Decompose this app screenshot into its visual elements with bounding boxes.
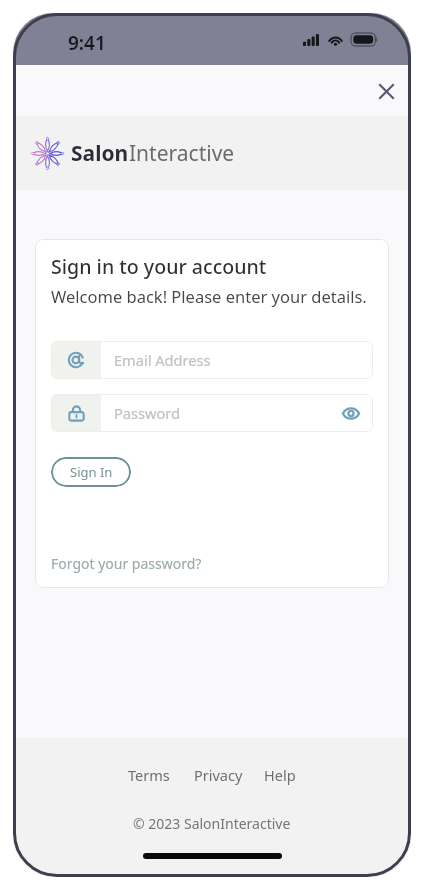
staticText: Email Address — [114, 350, 211, 370]
staticText: © 2023 SalonInteractive — [133, 814, 291, 833]
button[interactable]: Help — [264, 765, 296, 785]
staticText: Terms — [128, 765, 170, 785]
button[interactable]: Email Address — [51, 341, 373, 379]
staticText: Salon — [71, 139, 129, 168]
staticText: Password — [114, 403, 181, 423]
staticText: Welcome back! Please enter your details. — [51, 285, 367, 307]
button[interactable]: Sign In — [51, 457, 131, 487]
button[interactable]: Show password — [340, 402, 362, 424]
staticText: 9:41 — [68, 30, 106, 56]
staticText: Interactive — [129, 139, 235, 168]
staticText: Sign In — [70, 463, 113, 481]
staticText: Forgot your password? — [51, 554, 202, 573]
button[interactable]: Terms — [128, 765, 170, 785]
button[interactable]: Privacy — [194, 765, 243, 785]
button[interactable]: Close — [367, 72, 405, 110]
staticText: Sign in to your account — [51, 253, 267, 280]
button[interactable]: Password — [51, 394, 373, 432]
button[interactable]: Forgot your password? — [51, 554, 202, 573]
staticText: Privacy — [194, 765, 243, 785]
staticText: Help — [264, 765, 296, 785]
